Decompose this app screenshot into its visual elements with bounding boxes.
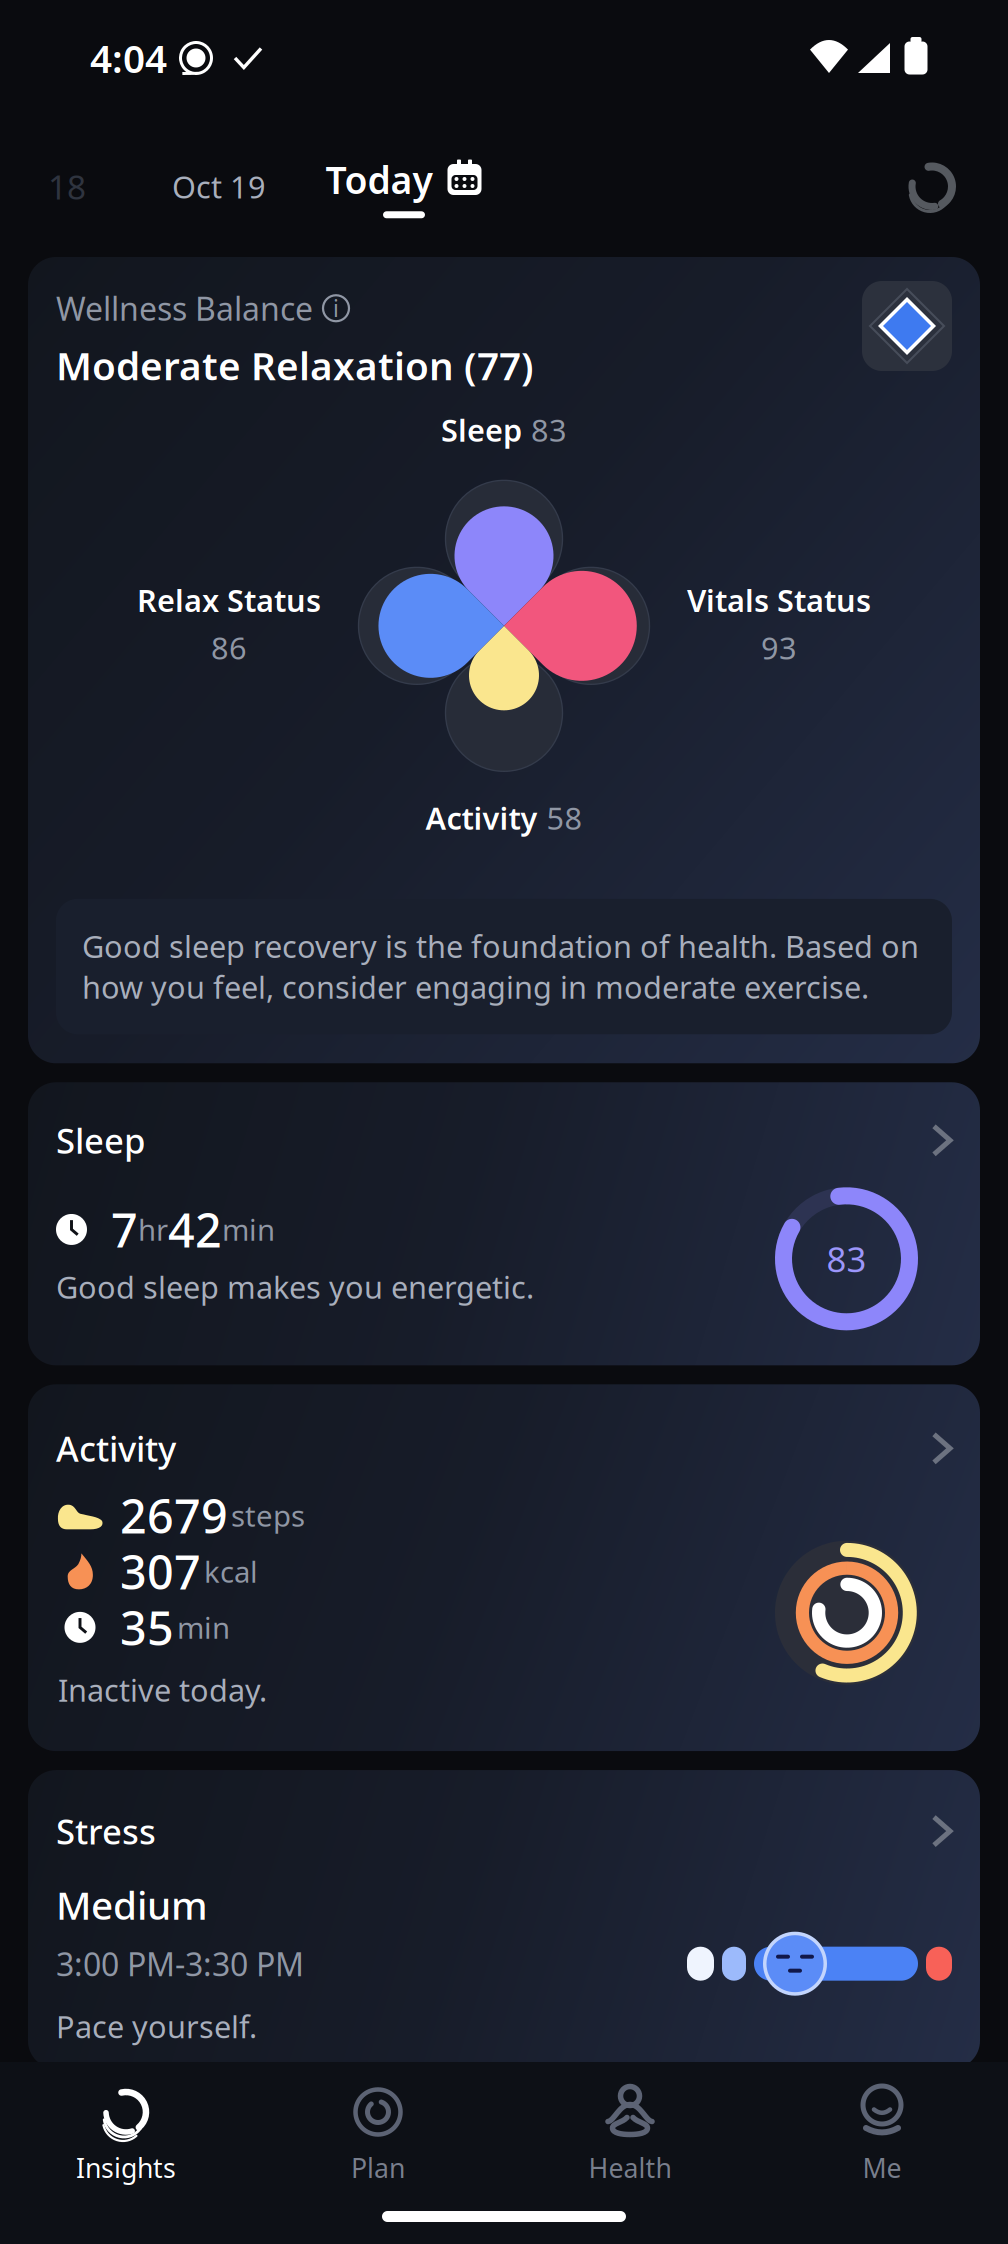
staticText: Vitals Status (687, 580, 871, 620)
staticText: Medium (56, 1879, 208, 1930)
button[interactable]: Me (756, 2076, 1008, 2193)
staticText: Activity (56, 1425, 176, 1471)
staticText: hr (138, 1210, 168, 1249)
button[interactable]: Activity (28, 1384, 980, 1751)
staticText: Activity (425, 797, 537, 838)
staticText: Sleep (56, 1117, 145, 1163)
staticText: 18 (48, 164, 86, 209)
staticText: 35 (120, 1596, 174, 1658)
button[interactable]: Insights (0, 2076, 252, 2193)
button[interactable]: Health (504, 2076, 756, 2193)
staticText: 86 (211, 627, 247, 668)
staticText: 42 (168, 1198, 222, 1260)
staticText: Health (588, 2150, 671, 2185)
staticText: Insights (76, 2150, 176, 2185)
staticText: min (177, 1608, 230, 1647)
staticText: 93 (761, 627, 797, 668)
staticText: Moderate Relaxation (77) (56, 339, 534, 391)
staticText: kcal (204, 1552, 258, 1591)
button[interactable]: Sleep (28, 1082, 980, 1365)
staticText: 3:00 PM-3:30 PM (56, 1942, 304, 1985)
staticText: Oct 19 (172, 166, 266, 207)
staticText: i (333, 293, 339, 323)
button[interactable]: App menu (906, 143, 958, 229)
button[interactable]: Stress (28, 1770, 980, 2069)
button[interactable]: Today (294, 143, 514, 229)
staticText: 7 (87, 1198, 138, 1260)
staticText: Relax Status (137, 580, 321, 620)
staticText: 83 (531, 409, 567, 450)
staticText: 83 (826, 1236, 866, 1282)
staticText: Pace yourself. (56, 2006, 257, 2047)
staticText: Sleep (441, 409, 522, 450)
staticText: Today (325, 155, 432, 204)
button[interactable]: Plan (252, 2076, 504, 2193)
staticText: steps (231, 1496, 305, 1535)
button[interactable]: Wellness level badge (862, 287, 952, 377)
button[interactable]: 18 (48, 143, 144, 229)
staticText: 4:04 (90, 32, 167, 84)
staticText: Stress (56, 1808, 156, 1854)
staticText: 58 (546, 797, 582, 838)
button[interactable]: Oct 19 (144, 143, 294, 229)
staticText: Plan (351, 2150, 405, 2185)
staticText: Good sleep recovery is the foundation of… (82, 926, 919, 1007)
staticText: Me (862, 2150, 901, 2185)
staticText: 307 (120, 1540, 201, 1602)
staticText: Good sleep makes you energetic. (56, 1266, 534, 1307)
staticText: 2679 (120, 1484, 228, 1546)
staticText: Wellness Balance (56, 287, 313, 329)
staticText: min (222, 1210, 275, 1249)
staticText: Inactive today. (58, 1669, 267, 1710)
